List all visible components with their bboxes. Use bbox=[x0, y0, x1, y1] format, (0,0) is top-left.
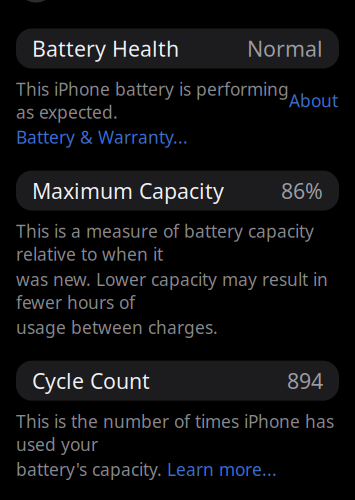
staticText: This is a measure of battery capacity re… bbox=[16, 220, 314, 266]
staticText: Battery & Warranty... bbox=[16, 126, 188, 149]
staticText: This iPhone battery is performing as exp… bbox=[16, 78, 289, 124]
staticText: Cycle Count bbox=[32, 366, 150, 395]
button[interactable]: Cycle Count bbox=[16, 361, 339, 401]
staticText: About bbox=[289, 89, 338, 112]
button[interactable]: Battery Health bbox=[16, 29, 339, 69]
staticText: 894 bbox=[287, 366, 323, 395]
staticText: Learn more... bbox=[167, 458, 277, 481]
button[interactable]: Maximum Capacity bbox=[16, 171, 339, 211]
staticText: was new. Lower capacity may result in fe… bbox=[16, 268, 328, 314]
staticText: This is the number of times iPhone has u… bbox=[16, 410, 334, 456]
staticText: Maximum Capacity bbox=[32, 176, 224, 205]
staticText: battery's capacity. bbox=[16, 458, 167, 481]
staticText: usage between charges. bbox=[16, 316, 218, 339]
staticText: Normal bbox=[247, 34, 323, 63]
staticText: Battery Health bbox=[32, 34, 179, 63]
button[interactable]: Back bbox=[17, 0, 55, 3]
staticText: 86% bbox=[281, 176, 323, 205]
staticText: ‹ bbox=[30, 0, 41, 5]
